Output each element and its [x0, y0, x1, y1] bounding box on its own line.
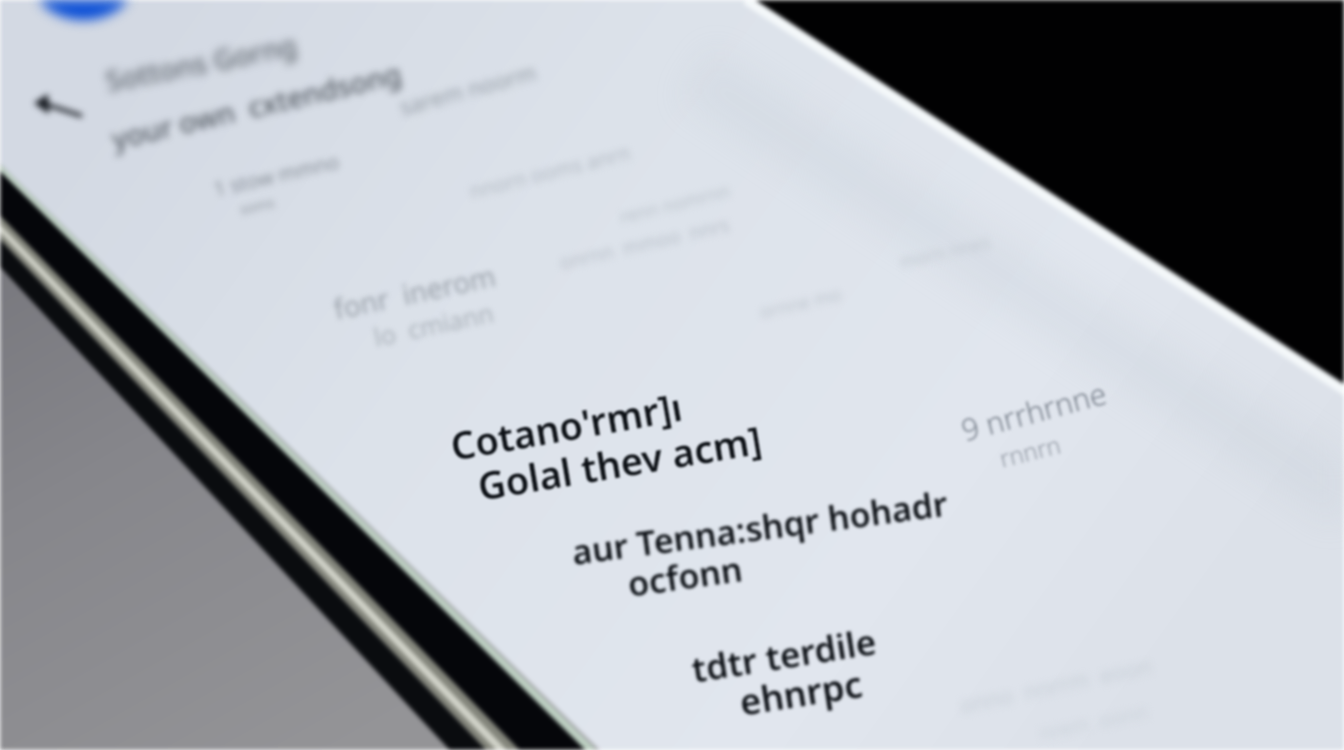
- button[interactable]: 9 nrrhrnne: [957, 372, 1111, 450]
- button[interactable]: nnorn ooms anrn: [467, 138, 633, 205]
- button[interactable]: onrnn mmoo nnrs: [557, 211, 732, 276]
- button[interactable]: ocfonn: [625, 545, 746, 607]
- button[interactable]: soms: [238, 192, 276, 219]
- staticText: Golal thev acm]: [474, 413, 765, 512]
- button[interactable]: tdtr terdile: [688, 617, 879, 694]
- staticText: fonr inerom: [330, 256, 499, 328]
- button[interactable]: 1 stow mmno: [211, 148, 342, 203]
- staticText: rnnrn: [996, 427, 1064, 474]
- staticText: aur Tenna:shqr hohadr: [569, 480, 951, 575]
- staticText: renn nomrnn: [617, 178, 733, 230]
- button[interactable]: Account: [29, 0, 138, 20]
- button[interactable]: ornne mo: [757, 281, 845, 325]
- button[interactable]: sarem noorm: [396, 56, 540, 121]
- button[interactable]: your own cxtendsong: [108, 54, 406, 157]
- staticText: ocfonn: [625, 545, 746, 607]
- staticText: 1 stow mmno: [211, 148, 342, 203]
- button[interactable]: fonr inerom: [330, 256, 499, 328]
- button[interactable]: ehnrpc: [736, 659, 866, 727]
- staticText: Cotano'rmr]ı: [446, 380, 686, 472]
- button[interactable]: Cotano'rmr]ı: [446, 380, 686, 472]
- button[interactable]: Sottons Gorng: [102, 25, 300, 100]
- button[interactable]: Golal thev acm]: [474, 413, 765, 512]
- staticText: soms: [238, 192, 276, 219]
- staticText: lo cmiann: [370, 295, 497, 354]
- button[interactable]: lo cmiann: [370, 295, 497, 354]
- staticText: ornne mo: [757, 281, 845, 325]
- button[interactable]: Back: [32, 92, 88, 128]
- button[interactable]: aur Tenna:shqr hohadr: [569, 480, 951, 575]
- staticText: tdtr terdile: [688, 617, 879, 694]
- button[interactable]: renn nomrnn: [617, 178, 733, 230]
- staticText: Sottons Gorng: [102, 25, 300, 100]
- staticText: your own cxtendsong: [108, 54, 406, 157]
- staticText: onrnn mmoo nnrs: [557, 211, 732, 276]
- staticText: ehnrpc: [736, 659, 866, 727]
- staticText: nnorn ooms anrn: [467, 138, 633, 205]
- staticText: sarem noorm: [396, 56, 540, 121]
- button[interactable]: rnnrn: [996, 427, 1064, 474]
- staticText: 9 nrrhrnne: [957, 372, 1111, 450]
